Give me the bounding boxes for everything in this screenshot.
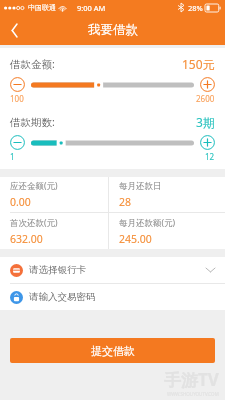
staticText: 632.00	[10, 232, 43, 246]
staticText: 245.00	[119, 232, 152, 246]
button[interactable]	[31, 78, 194, 92]
staticText: 借款期数:	[10, 115, 55, 129]
staticText: 1	[10, 151, 15, 162]
button[interactable]	[31, 136, 194, 150]
button[interactable]: 每月还款额(元)	[109, 213, 225, 249]
staticText: 首次还款(元)	[10, 217, 58, 229]
button[interactable]: Increase	[200, 135, 215, 150]
button[interactable]: 应还金额(元)	[0, 177, 108, 212]
staticText: 每月还款额(元)	[119, 217, 176, 229]
staticText: 请选择银行卡	[29, 264, 86, 276]
staticText: WWW.SHOUYOUTV.COM	[167, 391, 219, 397]
button[interactable]: Back	[0, 15, 30, 45]
staticText: 中国联通	[28, 3, 56, 12]
button[interactable]: 首次还款(元)	[0, 213, 108, 249]
staticText: 100	[10, 93, 24, 104]
staticText: 请输入交易密码	[29, 291, 96, 303]
staticText: 0.00	[10, 195, 31, 209]
staticText: 28%	[188, 3, 203, 13]
button[interactable]: Decrease	[10, 135, 25, 150]
button[interactable]: 请输入交易密码	[0, 284, 225, 310]
staticText: 手游TV	[164, 368, 219, 391]
staticText: 应还金额(元)	[10, 180, 58, 192]
staticText: 每月还款日	[119, 181, 162, 192]
staticText: 提交借款	[91, 344, 135, 358]
staticText: 3期	[196, 114, 215, 130]
button[interactable]: 每月还款日	[109, 177, 225, 212]
staticText: 12	[205, 151, 215, 162]
staticText: 9:00 AM	[77, 3, 106, 13]
staticText: 2600	[196, 93, 215, 104]
staticText: 150元	[182, 56, 215, 72]
staticText: 我要借款	[88, 22, 138, 38]
button[interactable]: Increase	[200, 77, 215, 92]
staticText: 借款金额:	[10, 57, 55, 71]
button[interactable]: Decrease	[10, 77, 25, 92]
button[interactable]: 请选择银行卡	[0, 257, 225, 283]
button[interactable]: 提交借款	[10, 338, 215, 363]
staticText: 28	[119, 195, 132, 209]
